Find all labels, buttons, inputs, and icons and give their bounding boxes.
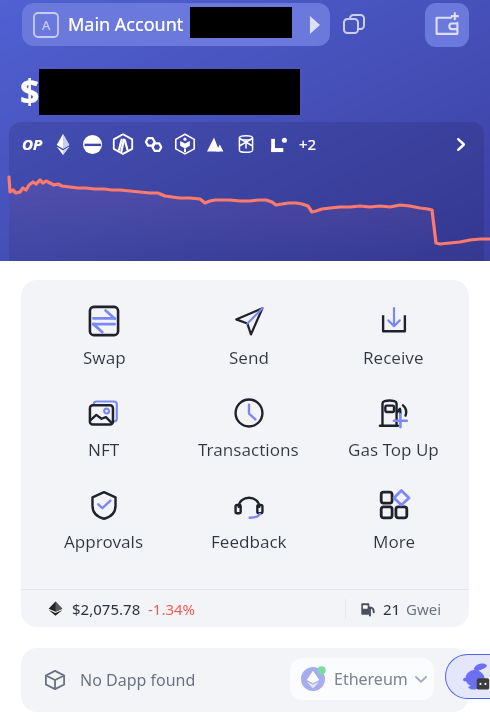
staticText: $ bbox=[20, 68, 40, 114]
button[interactable]: OP bbox=[9, 124, 484, 164]
button[interactable]: A bbox=[22, 3, 330, 46]
staticText: Receive bbox=[363, 346, 424, 369]
button[interactable]: More bbox=[321, 489, 466, 553]
staticText: Send bbox=[229, 346, 269, 369]
button[interactable]: Approvals bbox=[32, 489, 176, 553]
staticText: Transactions bbox=[198, 438, 299, 461]
staticText: Gas Top Up bbox=[348, 438, 439, 461]
staticText: -1.34% bbox=[148, 599, 196, 619]
staticText: Ethereum bbox=[334, 668, 408, 690]
button[interactable]: Open Rabby wallet bbox=[445, 654, 490, 699]
staticText: Swap bbox=[83, 346, 126, 369]
staticText: 21 bbox=[383, 599, 401, 619]
button[interactable]: NFT bbox=[32, 397, 176, 461]
button[interactable]: Add wallet bbox=[425, 3, 469, 47]
button[interactable]: Swap bbox=[32, 305, 176, 369]
button[interactable]: Send bbox=[176, 305, 321, 369]
button[interactable]: Feedback bbox=[176, 489, 321, 553]
staticText: NFT bbox=[88, 438, 120, 461]
button[interactable]: Ethereum bbox=[290, 658, 434, 700]
staticText: +2 bbox=[299, 134, 317, 154]
button[interactable]: Receive bbox=[321, 305, 466, 369]
staticText: OP bbox=[22, 134, 43, 154]
staticText: $2,075.78 bbox=[72, 599, 141, 619]
staticText: Approvals bbox=[64, 530, 144, 553]
staticText: Main Account bbox=[68, 12, 184, 37]
button[interactable]: Copy address bbox=[338, 9, 370, 41]
staticText: Gwei bbox=[406, 599, 442, 619]
button[interactable]: Transactions bbox=[176, 397, 321, 461]
button[interactable]: No Dapp found bbox=[21, 648, 469, 712]
button[interactable]: Gas Top Up bbox=[321, 397, 466, 461]
staticText: More bbox=[373, 530, 415, 553]
staticText: A bbox=[42, 16, 51, 34]
staticText: Feedback bbox=[211, 530, 287, 553]
staticText: No Dapp found bbox=[80, 669, 196, 691]
